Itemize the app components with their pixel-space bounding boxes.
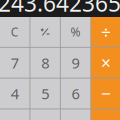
button[interactable]: 6 [61, 79, 90, 108]
button[interactable]: Minus [91, 79, 120, 108]
staticText: 6 [71, 84, 79, 103]
staticText: × [101, 51, 111, 74]
staticText: 4 [11, 84, 19, 103]
button[interactable]: Divide [91, 17, 120, 47]
staticText: − [101, 82, 111, 105]
staticText: % [70, 24, 80, 40]
button[interactable]: 2 [30, 109, 60, 120]
staticText: 8 [41, 53, 49, 72]
staticText: 9 [71, 53, 79, 72]
staticText: 7 [11, 53, 19, 72]
button[interactable]: 9 [61, 48, 90, 78]
staticText: C [11, 24, 19, 40]
staticText: 5 [41, 84, 49, 103]
staticText: 243.642365 [0, 0, 120, 18]
button[interactable]: % [61, 17, 90, 47]
button[interactable]: C [0, 17, 29, 47]
button[interactable]: Plus [91, 109, 120, 120]
button[interactable]: Multiply [91, 48, 120, 78]
button[interactable]: 7 [0, 48, 29, 78]
staticText: ÷ [101, 20, 111, 43]
button[interactable]: 5 [30, 79, 60, 108]
button[interactable]: 3 [61, 109, 90, 120]
button[interactable]: 1 [0, 109, 29, 120]
button[interactable]: Plus minus [30, 17, 60, 47]
button[interactable]: 4 [0, 79, 29, 108]
button[interactable]: 8 [30, 48, 60, 78]
